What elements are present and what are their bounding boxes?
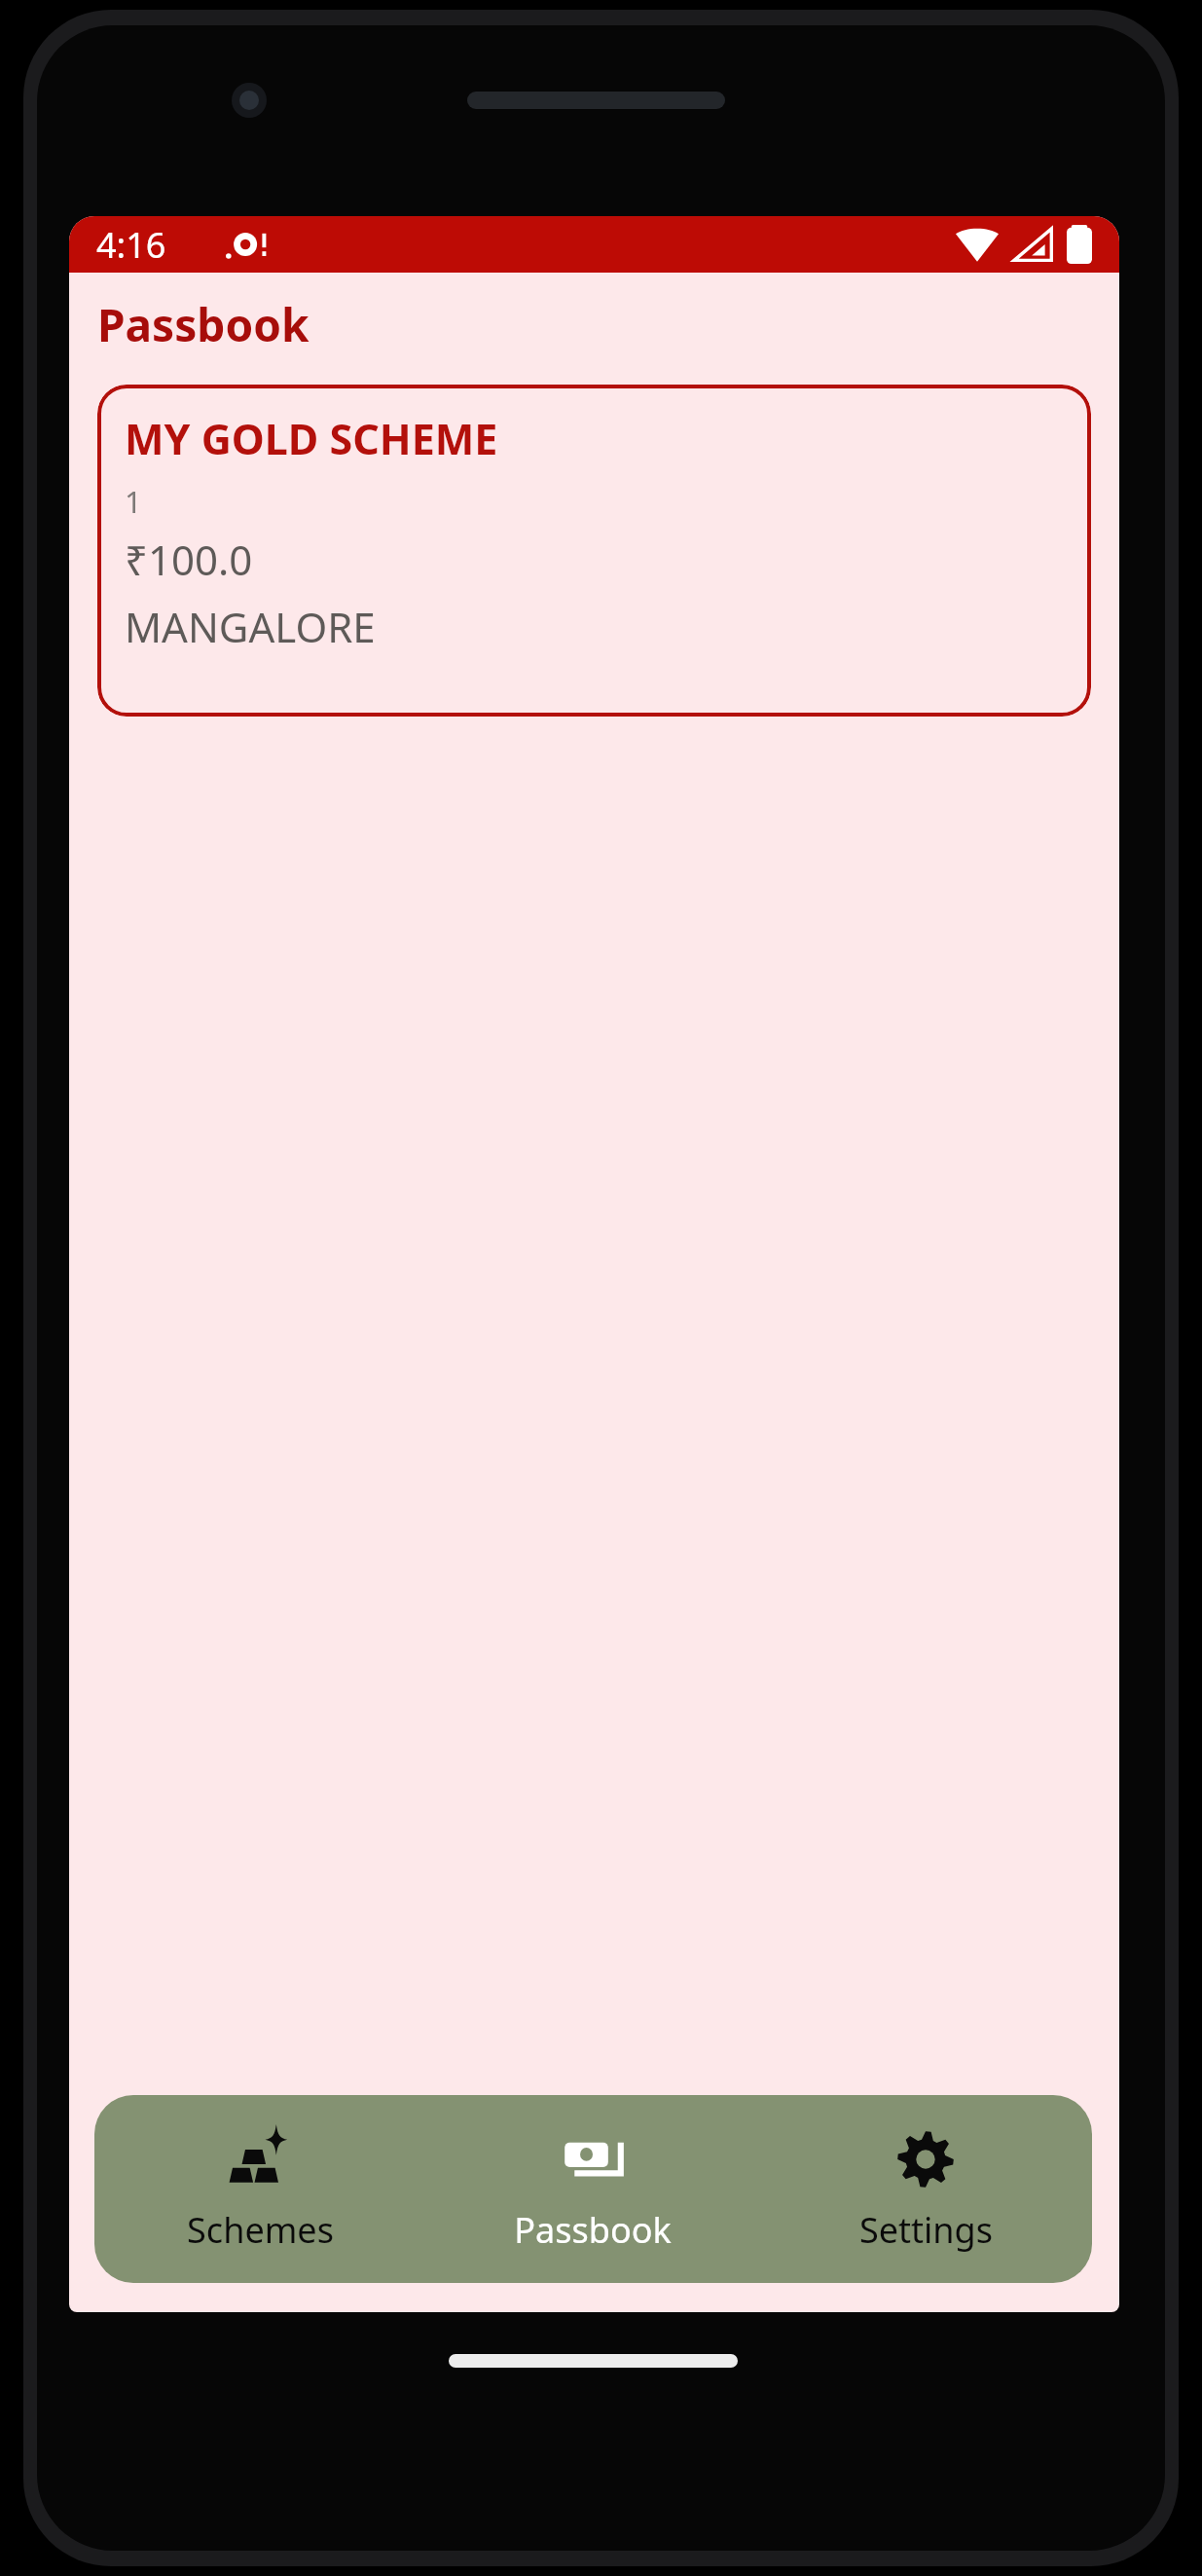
button[interactable]: Schemes — [94, 2095, 426, 2283]
staticText: ₹100.0 — [125, 532, 253, 587]
staticText: 4:16 — [96, 221, 166, 269]
staticText: Passbook — [514, 2206, 672, 2254]
staticText: Passbook — [97, 294, 310, 355]
staticText: MY GOLD SCHEME — [125, 410, 498, 467]
staticText: Schemes — [187, 2206, 334, 2254]
staticText: 1 — [125, 481, 142, 522]
button[interactable]: MY GOLD SCHEME — [97, 385, 1091, 717]
staticText: MANGALORE — [125, 599, 376, 654]
staticText: Settings — [859, 2206, 993, 2254]
button[interactable]: Settings — [759, 2095, 1092, 2283]
button[interactable]: Passbook — [426, 2095, 759, 2283]
